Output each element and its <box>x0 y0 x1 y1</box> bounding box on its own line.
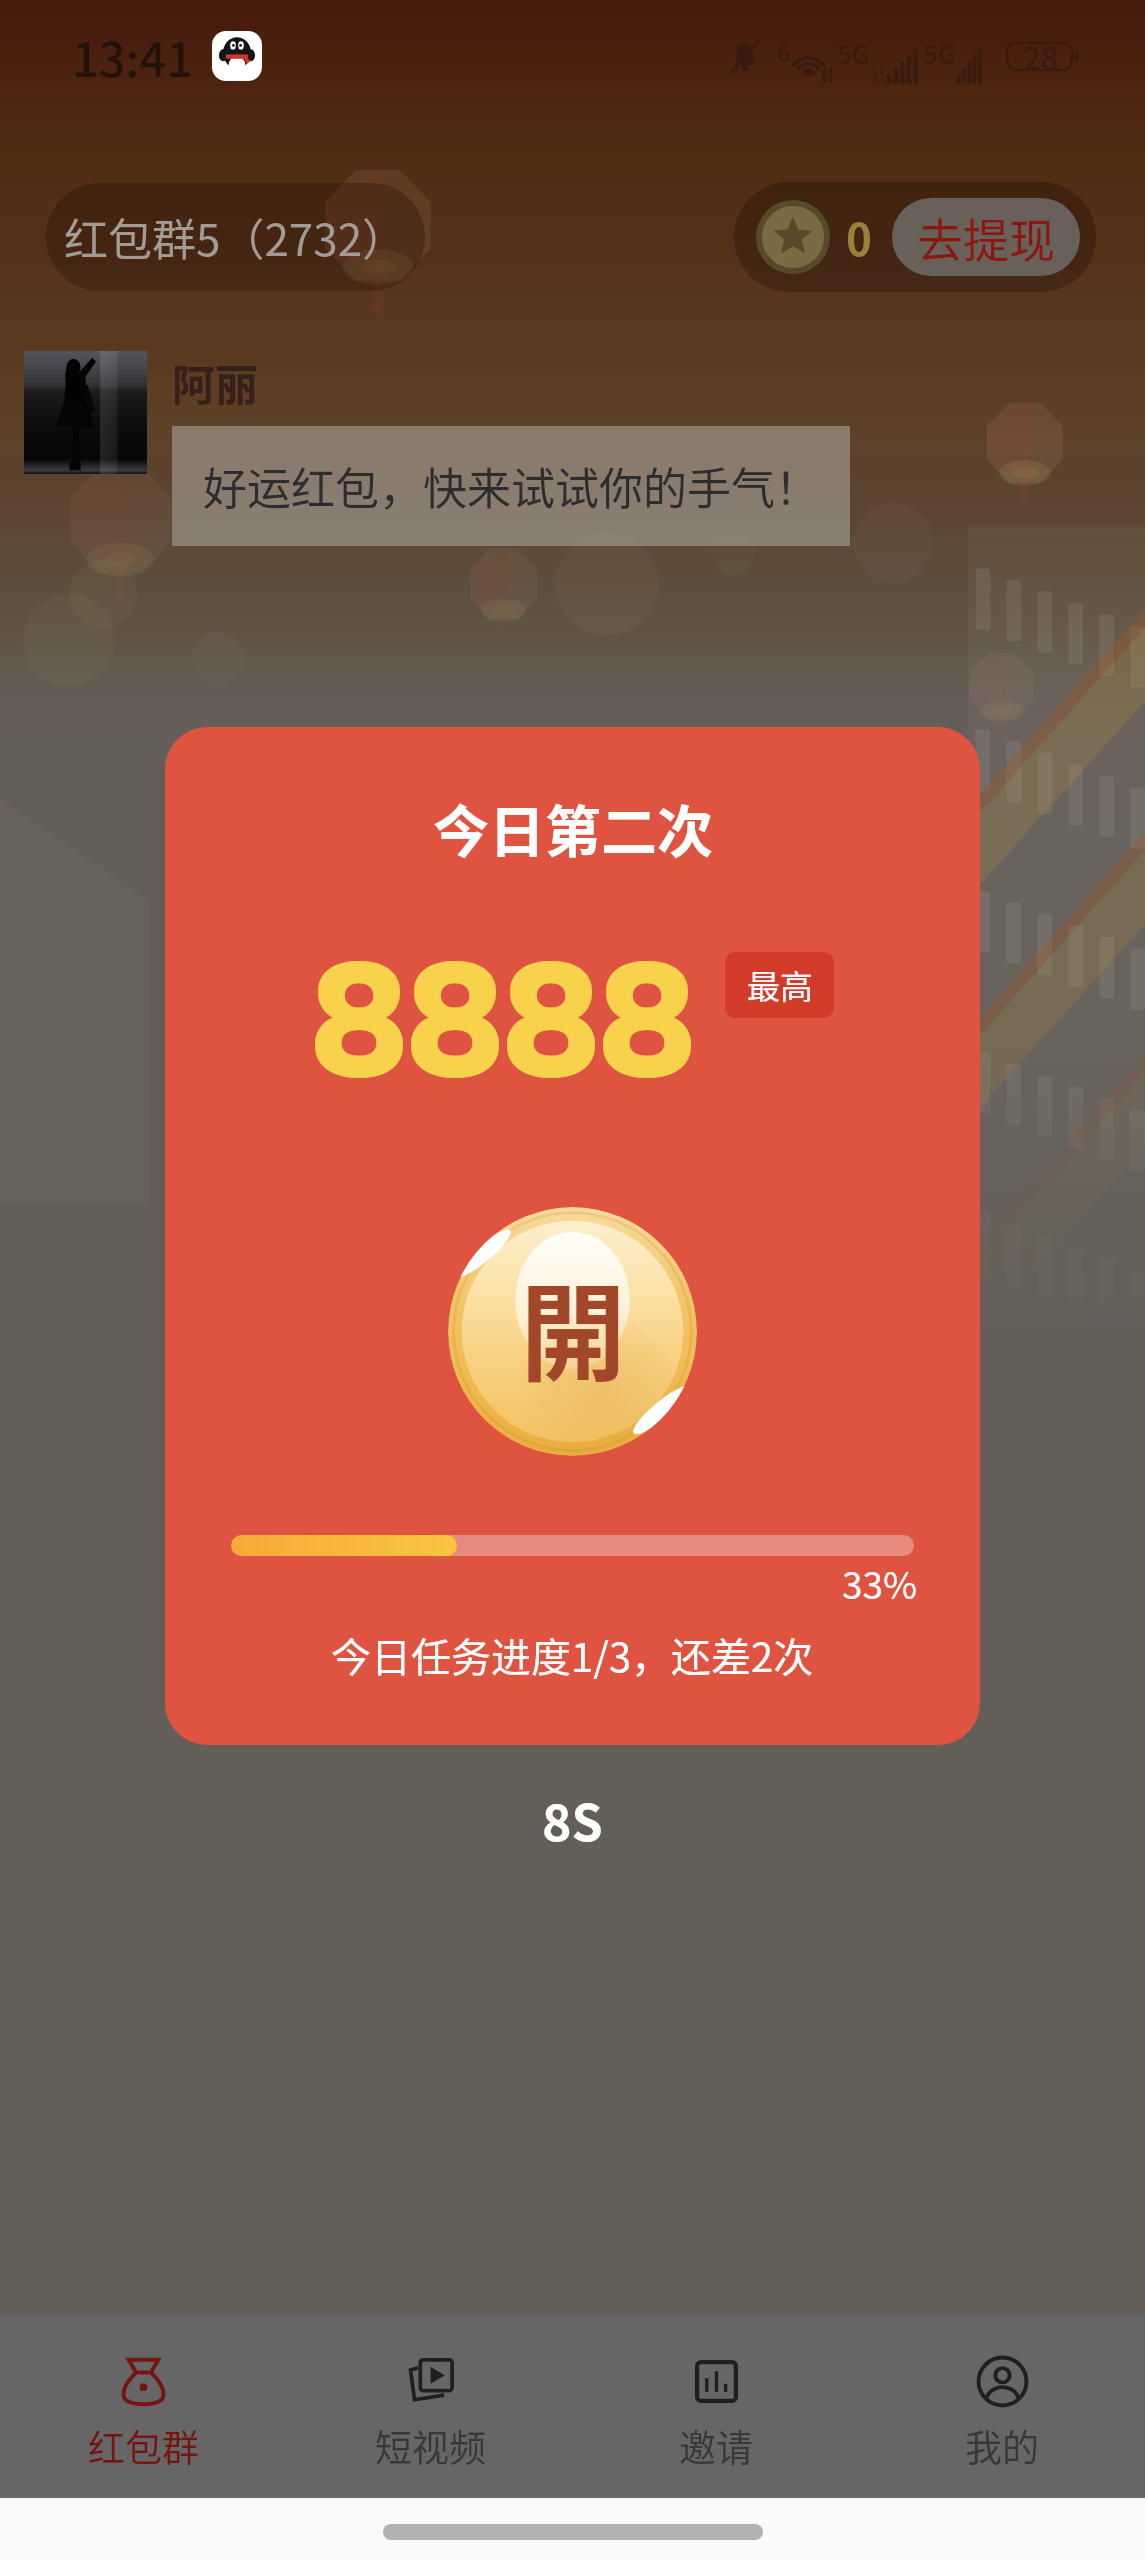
staticText: 8888 <box>311 914 696 1132</box>
staticText: 短视频 <box>375 2419 486 2473</box>
staticText: 8S <box>542 1783 603 1855</box>
button[interactable]: 短视频 <box>287 2315 573 2498</box>
staticText: 今日任务进度1/3，还差2次 <box>331 1626 814 1684</box>
staticText: 5G <box>923 34 957 72</box>
staticText: 去提现 <box>917 204 1055 271</box>
staticText: 13:41 <box>72 22 194 90</box>
button[interactable]: 邀请 <box>573 2315 859 2498</box>
button[interactable]: 红包群 <box>0 2315 287 2498</box>
staticText: 最高 <box>747 961 813 1009</box>
staticText: 红包群 <box>88 2419 199 2473</box>
staticText: 0 <box>846 205 872 269</box>
staticText: 開 <box>520 1249 626 1402</box>
button[interactable]: 开红包 <box>448 1207 697 1456</box>
staticText: 今日第二次 <box>433 787 713 868</box>
button[interactable]: 好运红包，快来试试你的手气！ <box>172 426 850 546</box>
staticText: 33% <box>842 1556 918 1610</box>
staticText: 我的 <box>965 2419 1039 2473</box>
staticText: 6 <box>777 34 791 69</box>
staticText: 28 <box>1023 34 1059 79</box>
staticText: 邀请 <box>679 2419 753 2473</box>
staticText: 阿丽 <box>172 351 258 413</box>
button[interactable]: 我的 <box>859 2315 1145 2498</box>
button[interactable]: 红包群5（2732） <box>46 183 425 291</box>
staticText: 红包群5（2732） <box>64 205 407 269</box>
button[interactable]: 去提现 <box>892 198 1080 276</box>
staticText: 5G <box>837 34 871 72</box>
staticText: 好运红包，快来试试你的手气！ <box>203 454 819 518</box>
